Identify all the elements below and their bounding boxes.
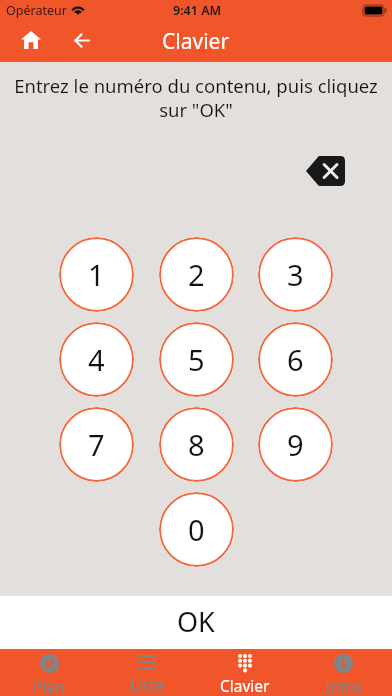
button[interactable]: Accueil xyxy=(14,23,48,57)
button[interactable]: 4 xyxy=(59,322,134,397)
staticText: 8 xyxy=(188,425,205,464)
button[interactable]: 9 xyxy=(258,407,333,482)
button[interactable]: 2 xyxy=(159,237,234,312)
button[interactable]: Plan xyxy=(0,649,98,696)
staticText: Plan xyxy=(33,676,65,696)
staticText: 5 xyxy=(188,340,205,379)
button[interactable]: 8 xyxy=(159,407,234,482)
staticText: 2 xyxy=(188,255,205,294)
staticText: OK xyxy=(177,603,215,640)
button[interactable]: 7 xyxy=(59,407,134,482)
button[interactable]: Clavier xyxy=(196,649,294,696)
button[interactable]: Infos xyxy=(294,649,392,696)
button[interactable]: OK xyxy=(0,596,392,649)
staticText: Opérateur xyxy=(6,2,67,19)
button[interactable]: 1 xyxy=(59,237,134,312)
staticText: 9:41 AM xyxy=(173,2,222,19)
staticText: Clavier xyxy=(220,675,270,696)
button[interactable]: 0 xyxy=(159,492,234,567)
staticText: Liste xyxy=(130,674,164,695)
button[interactable]: 6 xyxy=(258,322,333,397)
staticText: Entrez le numéro du contenu, puis clique… xyxy=(4,73,388,122)
staticText: 7 xyxy=(88,425,105,464)
staticText: 1 xyxy=(88,255,105,294)
staticText: 9 xyxy=(287,425,304,464)
button[interactable]: Retour xyxy=(65,23,99,57)
staticText: 4 xyxy=(88,340,105,379)
staticText: 6 xyxy=(287,340,304,379)
button[interactable]: Effacer xyxy=(306,156,345,186)
button[interactable]: Liste xyxy=(98,649,196,696)
staticText: Infos xyxy=(325,676,362,696)
staticText: 0 xyxy=(188,510,205,549)
button[interactable]: 5 xyxy=(159,322,234,397)
button[interactable]: 3 xyxy=(258,237,333,312)
staticText: Clavier xyxy=(162,27,230,56)
staticText: 3 xyxy=(287,255,304,294)
